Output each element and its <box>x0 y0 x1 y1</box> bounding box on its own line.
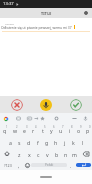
button[interactable]: Translate <box>53 115 60 122</box>
button[interactable]: More options <box>82 9 90 17</box>
staticText: o <box>77 127 81 134</box>
button[interactable]: g <box>42 136 51 148</box>
staticText: f <box>37 139 39 146</box>
staticText: . <box>70 162 72 169</box>
staticText: Notatka <box>5 22 14 25</box>
button[interactable]: q <box>0 124 10 136</box>
staticText: s <box>18 139 21 146</box>
button[interactable]: v <box>43 148 52 160</box>
button[interactable]: e <box>20 124 29 136</box>
button[interactable]: Backspace <box>79 148 92 160</box>
staticText: 0 <box>89 125 91 129</box>
button[interactable]: i <box>65 124 74 136</box>
button[interactable]: Settings <box>71 115 78 122</box>
staticText: a <box>9 139 12 146</box>
button[interactable]: y <box>47 124 56 136</box>
staticText: e <box>23 127 26 134</box>
staticText: u <box>59 127 63 134</box>
button[interactable]: GIF <box>26 115 33 122</box>
button[interactable]: k <box>69 136 78 148</box>
button[interactable]: z <box>14 148 24 160</box>
staticText: w <box>13 127 18 134</box>
button[interactable]: w <box>10 124 20 136</box>
button[interactable]: t <box>38 124 47 136</box>
staticText: 8 <box>71 125 73 129</box>
staticText: b <box>55 151 59 158</box>
button[interactable]: m <box>70 148 79 160</box>
button[interactable]: Clipboard <box>33 115 40 122</box>
button[interactable]: Record <box>40 99 52 111</box>
button[interactable]: l <box>78 136 87 148</box>
staticText: q <box>3 127 7 134</box>
button[interactable]: x <box>24 148 34 160</box>
staticText: 7 <box>62 125 64 129</box>
button[interactable]: c <box>34 148 43 160</box>
staticText: k <box>72 139 75 146</box>
button[interactable]: , <box>15 160 23 170</box>
staticText: 1 <box>6 125 8 129</box>
button[interactable]: ?123 <box>0 160 15 170</box>
button[interactable]: Shift <box>0 148 14 160</box>
button[interactable]: Google search <box>3 116 9 122</box>
button[interactable]: p <box>83 124 92 136</box>
staticText: 6 <box>53 125 55 129</box>
button[interactable]: Voice input <box>82 115 89 122</box>
staticText: i <box>69 127 71 134</box>
staticText: v <box>46 151 49 158</box>
staticText: ?123 <box>4 163 12 168</box>
staticText: 3 <box>26 125 28 129</box>
staticText: y <box>50 127 53 134</box>
staticText: 2 <box>16 125 18 129</box>
button[interactable]: s <box>15 136 24 148</box>
button[interactable]: f <box>33 136 42 148</box>
staticText: p <box>86 127 90 134</box>
staticText: j <box>64 139 66 146</box>
staticText: l <box>82 139 84 146</box>
button[interactable]: Polski <box>31 163 67 167</box>
staticText: m <box>72 151 77 158</box>
button[interactable]: Stamp <box>39 115 46 122</box>
staticText: z <box>18 151 21 158</box>
staticText: n <box>64 151 68 158</box>
staticText: h <box>54 139 58 146</box>
button[interactable]: n <box>61 148 70 160</box>
staticText: x <box>28 151 31 158</box>
staticText: , <box>18 162 20 169</box>
button[interactable]: h <box>51 136 60 148</box>
button[interactable]: a <box>5 136 15 148</box>
staticText: c <box>37 151 40 158</box>
staticText: Polski <box>45 163 54 167</box>
staticText: Odłożenie się ut pisanie pewszej, wemu m… <box>1 25 72 29</box>
button[interactable]: . <box>67 160 75 170</box>
staticText: 13:37 <box>3 1 14 7</box>
button[interactable]: Cancel <box>11 99 23 111</box>
button[interactable]: Emoji <box>23 160 31 170</box>
button[interactable]: d <box>24 136 33 148</box>
button[interactable]: o <box>74 124 83 136</box>
button[interactable]: u <box>56 124 65 136</box>
staticText: g <box>45 139 49 146</box>
staticText: d <box>27 139 31 146</box>
button[interactable]: Confirm <box>70 99 82 111</box>
button[interactable]: Enter <box>76 163 91 167</box>
staticText: TITLE <box>41 11 52 16</box>
staticText: t <box>42 127 44 134</box>
staticText: 9 <box>80 125 82 129</box>
staticText: r <box>32 127 35 134</box>
button[interactable]: b <box>52 148 61 160</box>
staticText: 5 <box>44 125 46 129</box>
staticText: 4 <box>35 125 37 129</box>
button[interactable]: j <box>60 136 69 148</box>
button[interactable]: Stickers <box>15 115 22 122</box>
button[interactable]: r <box>29 124 38 136</box>
